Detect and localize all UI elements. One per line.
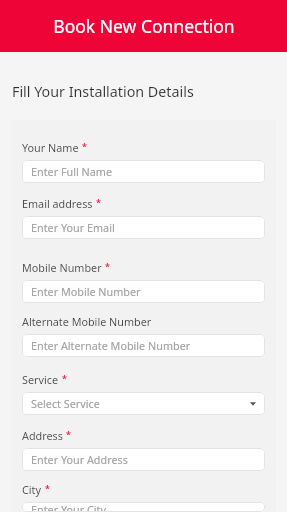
button[interactable]: Select Service — [22, 392, 265, 415]
staticText: Fill Your Installation Details — [12, 82, 194, 101]
staticText: Mobile Number — [22, 260, 102, 275]
button[interactable]: Enter Your City — [22, 502, 265, 512]
staticText: * — [45, 482, 50, 494]
staticText: Select Service — [31, 396, 100, 411]
staticText: Enter Your City — [31, 502, 106, 512]
staticText: * — [105, 260, 110, 272]
staticText: Alternate Mobile Number — [22, 314, 152, 329]
staticText: Enter Mobile Number — [31, 284, 141, 299]
button[interactable]: Enter Your Address — [22, 448, 265, 471]
staticText: Enter Full Name — [31, 164, 113, 179]
button[interactable]: Enter Full Name — [22, 160, 265, 183]
button[interactable]: Enter Your Email — [22, 216, 265, 239]
staticText: Enter Your Email — [31, 220, 115, 235]
staticText: Book New Connection — [53, 14, 235, 38]
staticText: Address — [22, 428, 63, 443]
staticText: * — [62, 372, 67, 384]
staticText: Your Name — [22, 140, 79, 155]
staticText: Enter Alternate Mobile Number — [31, 338, 191, 353]
staticText: Service — [22, 372, 59, 387]
staticText: Enter Your Address — [31, 452, 128, 467]
button[interactable]: Enter Alternate Mobile Number — [22, 334, 265, 357]
staticText: * — [96, 196, 101, 208]
staticText: * — [66, 428, 71, 440]
staticText: Email address — [22, 196, 93, 211]
button[interactable]: Enter Mobile Number — [22, 280, 265, 303]
staticText: City — [22, 482, 42, 497]
staticText: * — [82, 140, 87, 152]
